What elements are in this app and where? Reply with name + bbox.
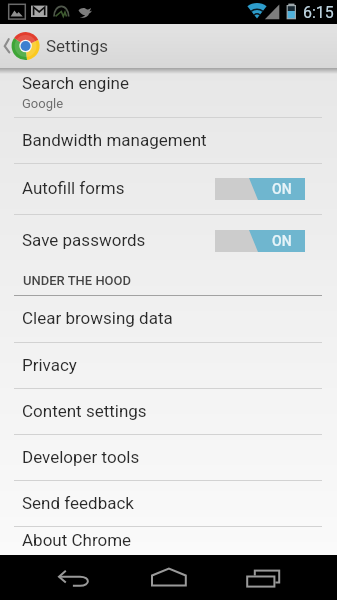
- staticText: Bandwidth management: [22, 130, 207, 150]
- button[interactable]: Recent apps: [220, 555, 310, 600]
- staticText: Send feedback: [22, 493, 134, 513]
- staticText: Developer tools: [22, 447, 140, 467]
- staticText: 6:15: [303, 3, 334, 22]
- button[interactable]: Clear browsing data: [0, 296, 337, 342]
- staticText: Content settings: [22, 401, 147, 421]
- button[interactable]: Privacy: [0, 343, 337, 388]
- staticText: About Chrome: [22, 530, 132, 550]
- staticText: UNDER THE HOOD: [23, 273, 132, 288]
- staticText: Google: [22, 96, 64, 111]
- button[interactable]: Home: [125, 555, 215, 600]
- staticText: Search engine: [22, 73, 129, 93]
- staticText: Settings: [46, 36, 109, 56]
- button[interactable]: Search engine: [0, 68, 337, 117]
- staticText: Clear browsing data: [22, 308, 173, 328]
- button[interactable]: Toggle on: [215, 230, 305, 252]
- button[interactable]: Content settings: [0, 389, 337, 434]
- button[interactable]: Bandwidth management: [0, 118, 337, 163]
- staticText: ON: [272, 181, 292, 197]
- staticText: Privacy: [22, 355, 77, 375]
- staticText: Autofill forms: [22, 178, 125, 198]
- staticText: ON: [272, 233, 292, 249]
- button[interactable]: Save passwords: [0, 215, 337, 266]
- button[interactable]: About Chrome: [0, 527, 337, 555]
- button[interactable]: Developer tools: [0, 435, 337, 480]
- button[interactable]: Navigate up: [0, 24, 43, 68]
- button[interactable]: Autofill forms: [0, 164, 337, 214]
- button[interactable]: Toggle on: [215, 178, 305, 200]
- button[interactable]: Send feedback: [0, 481, 337, 526]
- button[interactable]: Back: [30, 555, 120, 600]
- staticText: Save passwords: [22, 230, 146, 250]
